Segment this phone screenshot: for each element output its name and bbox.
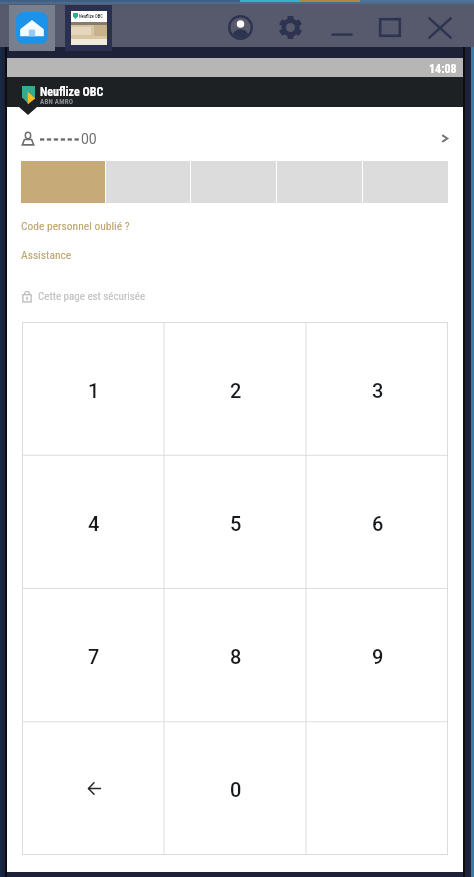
staticText: 8 (230, 645, 242, 668)
button[interactable]: 5 (164, 456, 306, 589)
staticText: 4 (88, 512, 100, 535)
staticText: Neuflize OBC (40, 85, 104, 99)
button[interactable]: Assistance (21, 247, 72, 262)
staticText: Cette page est sécurisée (38, 290, 146, 303)
button[interactable]: Close (423, 11, 456, 44)
button[interactable]: Home tab (9, 5, 55, 51)
staticText: 1 (88, 379, 100, 402)
button[interactable]: Code personnel oublié ? (21, 218, 130, 233)
staticText: 6 (372, 512, 384, 535)
staticText: 5 (230, 512, 242, 535)
button[interactable]: 8 (164, 589, 306, 722)
button[interactable]: 7 (22, 589, 164, 722)
button[interactable]: 1 (22, 322, 164, 456)
staticText: 0 (230, 778, 242, 801)
staticText: Assistance (21, 248, 72, 261)
button[interactable]: 3 (306, 322, 448, 456)
staticText: 2 (230, 379, 242, 402)
button[interactable]: 0 (164, 722, 306, 855)
staticText: Neuflize OBC (79, 14, 103, 19)
staticText: ABN AMRO (40, 98, 74, 106)
button[interactable]: Settings (274, 11, 307, 44)
staticText: 14:08 (429, 62, 457, 76)
staticText: Code personnel oublié ? (21, 219, 130, 232)
button[interactable]: 4 (22, 456, 164, 589)
button[interactable]: 2 (164, 322, 306, 456)
button[interactable]: 00 (7, 120, 463, 157)
button[interactable]: Account (224, 11, 257, 44)
staticText: 3 (372, 379, 384, 402)
button[interactable]: Neuflize OBC tab (65, 5, 112, 51)
staticText: 9 (372, 645, 384, 668)
staticText: 00 (81, 131, 97, 147)
button[interactable]: 6 (306, 456, 448, 589)
button[interactable]: Maximize (373, 11, 406, 44)
button[interactable]: 9 (306, 589, 448, 722)
button[interactable]: Minimize (325, 11, 358, 44)
button[interactable] (306, 722, 448, 855)
button[interactable]: Backspace (22, 722, 164, 855)
staticText: 7 (88, 645, 100, 668)
